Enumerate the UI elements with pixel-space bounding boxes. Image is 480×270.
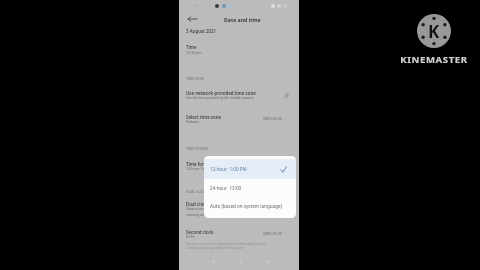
staticText: 3 August 2021 [186, 28, 217, 34]
button[interactable]: Auto (based on system language) [204, 198, 296, 214]
staticText: Auto (based on system language) [210, 203, 282, 209]
button[interactable]: Use network-provided time zone [179, 90, 299, 103]
staticText: Use the time provided by the mobile netw… [186, 96, 254, 100]
staticText: 12:36 pm [186, 50, 202, 55]
staticText: DUAL CLOCK [186, 189, 207, 194]
staticText: 12-hour 1:00 PM [210, 166, 247, 172]
staticText: Dual clock [186, 201, 208, 207]
button[interactable]: Use network-provided time zone [279, 92, 289, 98]
staticText: Show a second clock while roaming abroad [186, 206, 227, 217]
staticText: Kolkata [186, 119, 199, 124]
button[interactable]: Select time zone [179, 114, 299, 127]
button[interactable]: Dual clock [179, 201, 299, 217]
staticText: GMT+05:30 [263, 116, 283, 121]
button[interactable]: 24-hour 13:00 [204, 178, 296, 198]
staticText: K [428, 20, 440, 43]
staticText: Time format [186, 161, 213, 167]
staticText: Use network-provided time zone [186, 90, 256, 96]
staticText: Delhi [186, 234, 195, 239]
staticText: 12-hour 1:00 PM [186, 166, 214, 171]
staticText: GMT+05:30 [263, 231, 283, 236]
staticText: KINEMASTER [400, 53, 468, 66]
button[interactable]: Time format [179, 161, 299, 174]
staticText: TIME FORMAT [186, 146, 209, 151]
staticText: TIME ZONE [186, 76, 205, 81]
staticText: 24-hour 13:00 [210, 185, 242, 191]
staticText: Date and time [224, 16, 261, 23]
staticText: Set the second clock to show the local t… [186, 242, 267, 250]
button[interactable]: Second clock [179, 229, 299, 242]
staticText: Select time zone [186, 114, 222, 120]
button[interactable]: Time [179, 44, 299, 57]
button[interactable]: 12-hour 1:00 PM [204, 159, 296, 179]
staticText: Time [186, 44, 197, 50]
button[interactable]: Back [184, 12, 198, 26]
staticText: Second clock [186, 229, 214, 235]
